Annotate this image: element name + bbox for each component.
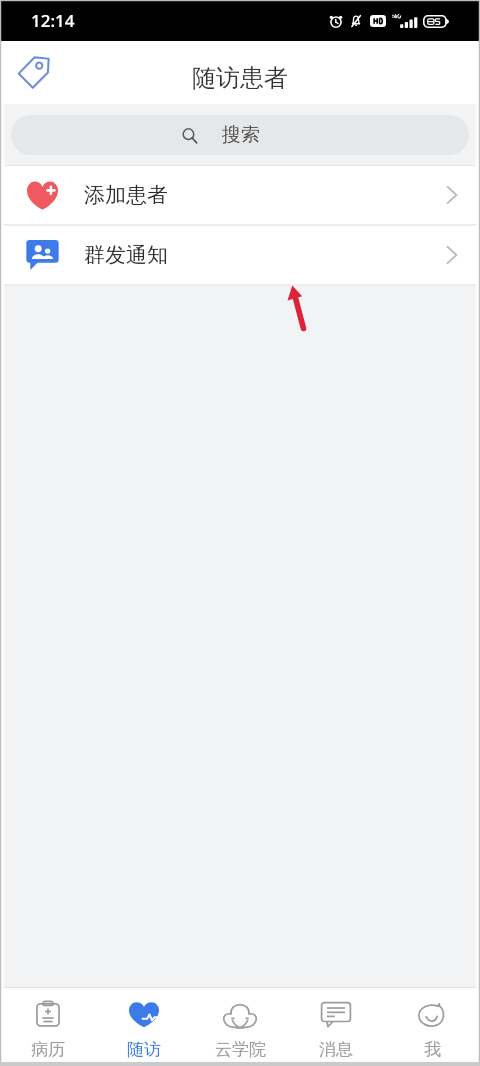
button[interactable]: 群发通知 — [0, 226, 480, 284]
staticText: 随访患者 — [192, 63, 288, 93]
staticText: 云学院 — [215, 1039, 266, 1060]
staticText: 消息 — [319, 1039, 353, 1060]
staticText: 病历 — [31, 1039, 65, 1060]
button[interactable]: 消息 — [288, 988, 384, 1066]
staticText: 我 — [424, 1039, 441, 1060]
staticText: 群发通知 — [84, 242, 168, 268]
staticText: 12:14 — [31, 9, 75, 32]
button[interactable]: 添加患者 — [0, 166, 480, 224]
button[interactable]: 搜索 — [11, 115, 469, 155]
staticText: 添加患者 — [84, 182, 168, 208]
button[interactable]: 病历 — [0, 988, 96, 1066]
button[interactable]: 云学院 — [192, 988, 288, 1066]
staticText: 搜索 — [222, 123, 260, 147]
button[interactable]: Tags — [6, 45, 61, 100]
staticText: 随访 — [127, 1039, 161, 1060]
button[interactable]: 随访 — [96, 988, 192, 1066]
button[interactable]: 我 — [384, 988, 480, 1066]
